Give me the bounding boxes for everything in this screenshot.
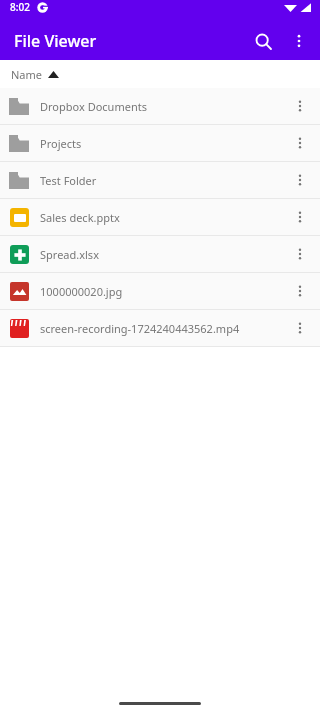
button[interactable]: More options for screen-recording-172424… <box>282 310 318 346</box>
button[interactable]: More options for 1000000020.jpg <box>282 273 318 309</box>
button[interactable]: Spread.xlsx <box>0 236 320 272</box>
button[interactable]: Dropbox Documents <box>0 88 320 124</box>
button[interactable]: screen-recording-1724240443562.mp4 <box>0 310 320 346</box>
button[interactable]: Sales deck.pptx <box>0 199 320 235</box>
staticText: 8:02 <box>10 0 30 14</box>
button[interactable]: Test Folder <box>0 162 320 198</box>
button[interactable]: Projects <box>0 125 320 161</box>
staticText: Projects <box>40 136 282 151</box>
button[interactable]: More options for Test Folder <box>282 162 318 198</box>
button[interactable]: More options for Spread.xlsx <box>282 236 318 272</box>
staticText: screen-recording-1724240443562.mp4 <box>40 321 282 336</box>
staticText: File Viewer <box>14 30 97 52</box>
button[interactable]: More options <box>282 24 316 58</box>
staticText: Test Folder <box>40 173 282 188</box>
staticText: Spread.xlsx <box>40 247 282 262</box>
button[interactable]: 1000000020.jpg <box>0 273 320 309</box>
button[interactable]: Name <box>0 60 320 88</box>
button[interactable]: Search <box>244 22 282 60</box>
staticText: 1000000020.jpg <box>40 284 282 299</box>
staticText: Sales deck.pptx <box>40 210 282 225</box>
staticText: Dropbox Documents <box>40 99 282 114</box>
button[interactable]: More options for Projects <box>282 125 318 161</box>
button[interactable]: More options for Sales deck.pptx <box>282 199 318 235</box>
staticText: Name <box>11 67 43 82</box>
button[interactable]: More options for Dropbox Documents <box>282 88 318 124</box>
